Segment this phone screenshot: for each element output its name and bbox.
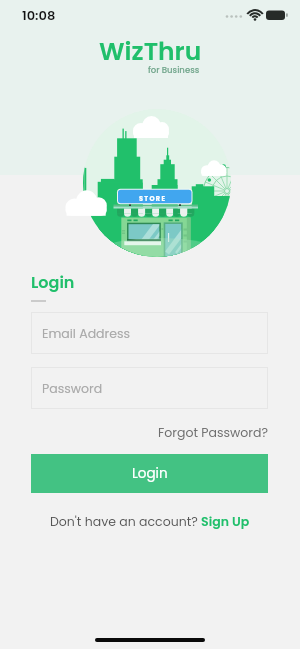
button[interactable]: Email Address [31,312,268,354]
staticText: STORE [139,194,167,203]
staticText: Email Address [42,325,131,342]
staticText: WizThru [99,34,202,69]
button[interactable]: Login [31,271,75,293]
staticText: Login [132,464,168,483]
staticText: Password [42,380,103,397]
staticText: for Business [148,64,200,76]
staticText: 10:08 [22,6,56,24]
button[interactable]: Login [31,454,268,493]
button[interactable]: Don't have an account? Sign Up [50,513,250,530]
button[interactable]: Password [31,367,268,409]
button[interactable]: Forgot Password? [158,424,268,441]
